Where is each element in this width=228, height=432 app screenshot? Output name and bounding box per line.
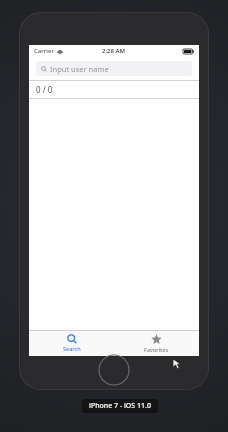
staticText: Search bbox=[63, 345, 81, 352]
staticText: Favorites bbox=[144, 346, 169, 353]
button[interactable]: 0 / 0 bbox=[29, 81, 199, 98]
staticText: Input user name bbox=[50, 64, 109, 74]
button[interactable]: Input user name bbox=[36, 61, 192, 76]
button[interactable]: Search bbox=[29, 331, 114, 356]
button[interactable]: Favorites bbox=[114, 331, 199, 356]
staticText: Carrier bbox=[34, 47, 54, 55]
staticText: 2:28 AM bbox=[102, 47, 126, 55]
staticText: iPhone 7 - iOS 11.0 bbox=[89, 401, 151, 411]
staticText: 0 / 0 bbox=[36, 84, 53, 95]
other: Home bbox=[98, 354, 130, 386]
